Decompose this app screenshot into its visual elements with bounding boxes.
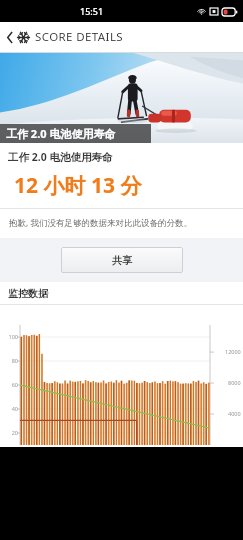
staticText: 工作 2.0 电池使用寿命 <box>8 150 113 164</box>
staticText: 工作 2.0 电池使用寿命 <box>6 126 116 141</box>
staticText: 共享 <box>112 254 132 267</box>
staticText: 100 <box>8 333 18 340</box>
staticText: 监控数据 <box>8 287 48 300</box>
staticText: 抱歉, 我们没有足够的数据来对比此设备的分数。 <box>9 217 192 229</box>
staticText: SCORE DETAILS <box>35 29 124 45</box>
staticText: 15:51 <box>80 5 104 17</box>
staticText: 12 小时 13 分 <box>14 171 142 200</box>
staticText: 40 <box>11 405 18 412</box>
button[interactable]: 共享 <box>61 247 183 273</box>
button[interactable]: Back <box>5 24 15 50</box>
staticText: 60 <box>11 381 18 388</box>
staticText: 80 <box>11 357 18 364</box>
staticText: 8000 <box>228 379 241 386</box>
staticText: 12000 <box>225 348 241 355</box>
staticText: 4000 <box>228 410 241 417</box>
staticText: 20 <box>11 429 18 436</box>
